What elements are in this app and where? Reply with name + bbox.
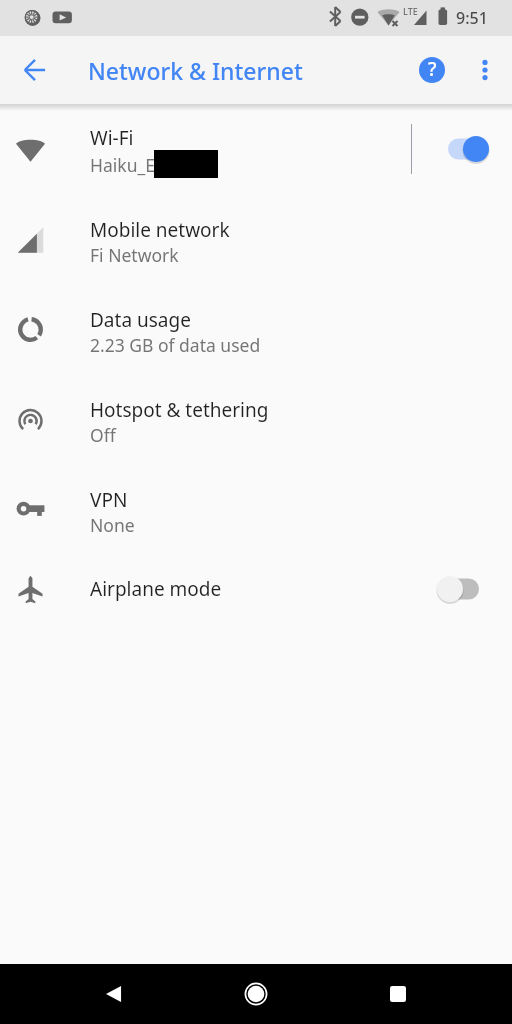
button[interactable]: Turn on xyxy=(434,559,512,619)
staticText: Mobile network xyxy=(90,217,230,243)
button[interactable]: Navigate up xyxy=(11,46,59,94)
button[interactable]: Data usage xyxy=(0,284,512,374)
button[interactable]: VPN xyxy=(0,464,512,554)
staticText: LTE xyxy=(403,5,418,17)
staticText: Data usage xyxy=(90,307,191,333)
button[interactable]: Wi-Fi xyxy=(0,104,512,194)
button[interactable]: Home xyxy=(232,970,280,1018)
button[interactable]: More options xyxy=(461,46,509,94)
staticText: Fi Network xyxy=(90,243,179,267)
button[interactable]: Help xyxy=(408,46,456,94)
button[interactable]: Recent apps xyxy=(374,970,422,1018)
button[interactable]: Turn off xyxy=(434,119,512,179)
staticText: Wi-Fi xyxy=(90,125,134,151)
button[interactable]: Back xyxy=(90,970,138,1018)
staticText: Haiku_E xyxy=(90,153,155,177)
staticText: Network & Internet xyxy=(88,55,303,86)
staticText: Off xyxy=(90,423,116,447)
button[interactable]: Mobile network xyxy=(0,194,512,284)
staticText: Hotspot & tethering xyxy=(90,397,269,423)
staticText: ? xyxy=(428,57,437,82)
staticText: VPN xyxy=(90,487,128,513)
staticText: Airplane mode xyxy=(90,576,222,602)
staticText: 2.23 GB of data used xyxy=(90,333,261,357)
button[interactable]: Airplane mode xyxy=(0,554,512,624)
button[interactable]: Hotspot & tethering xyxy=(0,374,512,464)
staticText: None xyxy=(90,513,135,537)
staticText: 9:51 xyxy=(456,7,488,29)
